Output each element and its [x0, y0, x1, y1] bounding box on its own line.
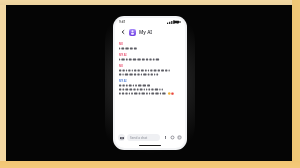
staticText: 9:41 — [119, 20, 126, 24]
button[interactable]: Gallery — [176, 134, 182, 140]
button[interactable]: Voice input — [162, 134, 168, 140]
staticText: ME — [119, 64, 123, 68]
staticText: MY AI — [119, 53, 127, 57]
staticText: Send a chat — [130, 136, 148, 140]
staticText: My AI — [139, 29, 153, 35]
staticText: MY AI — [119, 79, 127, 83]
button[interactable]: My AI — [138, 28, 154, 36]
staticText: ME — [119, 42, 123, 46]
button[interactable]: Camera — [118, 134, 125, 141]
button[interactable]: Back — [119, 28, 127, 36]
button[interactable]: Stickers — [169, 134, 175, 140]
button[interactable]: Send a chat — [127, 134, 160, 141]
